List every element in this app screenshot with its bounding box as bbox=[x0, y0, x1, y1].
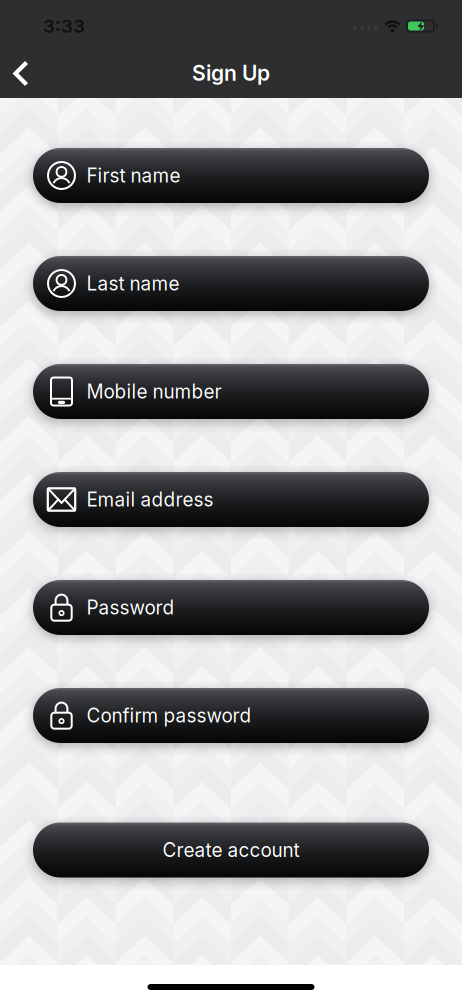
button[interactable]: Confirm password bbox=[33, 688, 429, 743]
staticText: Create account bbox=[162, 838, 299, 861]
staticText: Sign Up bbox=[192, 60, 270, 86]
staticText: Confirm password bbox=[86, 704, 251, 727]
button[interactable]: Password bbox=[33, 580, 429, 635]
button[interactable]: Mobile number bbox=[33, 364, 429, 419]
staticText: First name bbox=[86, 164, 180, 187]
staticText: Last name bbox=[86, 272, 179, 295]
button[interactable]: Back bbox=[6, 58, 36, 88]
staticText: Email address bbox=[86, 488, 213, 511]
button[interactable]: Create account bbox=[33, 822, 429, 877]
button[interactable]: First name bbox=[33, 148, 429, 203]
staticText: Password bbox=[86, 596, 174, 619]
staticText: 3:33 bbox=[43, 15, 85, 37]
staticText: Mobile number bbox=[86, 380, 221, 403]
button[interactable]: Email address bbox=[33, 472, 429, 527]
button[interactable]: Last name bbox=[33, 256, 429, 311]
